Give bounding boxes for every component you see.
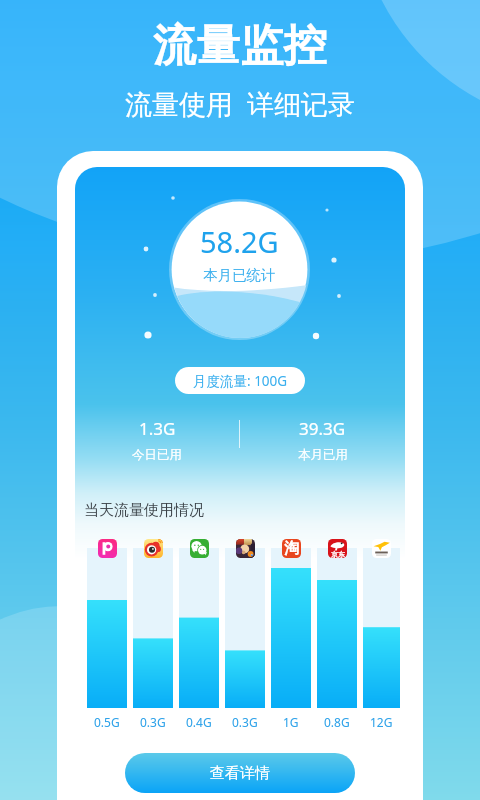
staticText: 今日已用 bbox=[132, 447, 182, 463]
staticText: 39.3G bbox=[299, 417, 346, 440]
staticText: 0.4G bbox=[186, 714, 212, 728]
staticText: 本月已用 bbox=[298, 447, 348, 463]
staticText: 本月已统计 bbox=[203, 266, 276, 284]
staticText: 0.8G bbox=[324, 714, 350, 728]
staticText: 12G bbox=[370, 714, 393, 728]
staticText: 查看详情 bbox=[210, 764, 270, 783]
staticText: 0.3G bbox=[140, 714, 166, 728]
staticText: 当天流量使用情况 bbox=[84, 501, 204, 520]
staticText: 流量使用 详细记录 bbox=[125, 85, 356, 122]
staticText: 1.3G bbox=[139, 417, 176, 440]
button[interactable]: 月度流量: 100G bbox=[175, 367, 305, 394]
staticText: 淘 bbox=[284, 539, 299, 558]
staticText: 1G bbox=[283, 714, 299, 728]
staticText: 流量监控 bbox=[153, 19, 327, 73]
staticText: 0.5G bbox=[94, 714, 120, 728]
staticText: 0.3G bbox=[232, 714, 258, 728]
staticText: 京东 bbox=[331, 550, 345, 558]
staticText: 月度流量: 100G bbox=[193, 372, 288, 390]
button[interactable]: 查看详情 bbox=[125, 753, 355, 793]
staticText: 58.2G bbox=[200, 222, 279, 261]
